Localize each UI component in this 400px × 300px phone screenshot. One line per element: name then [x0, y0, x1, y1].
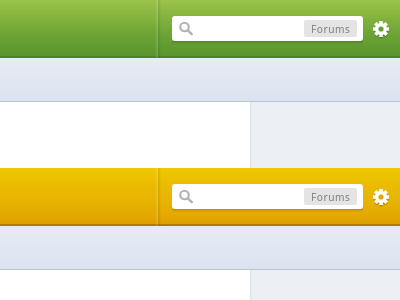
staticText: Forums — [311, 190, 351, 204]
staticText: Forums — [311, 22, 351, 36]
button[interactable]: Settings — [371, 187, 391, 207]
button[interactable]: Forums — [304, 20, 357, 37]
button[interactable]: Forums — [304, 188, 357, 205]
button[interactable]: Settings — [371, 19, 391, 39]
button[interactable]: Search — [172, 16, 363, 41]
button[interactable]: Search — [172, 184, 363, 209]
